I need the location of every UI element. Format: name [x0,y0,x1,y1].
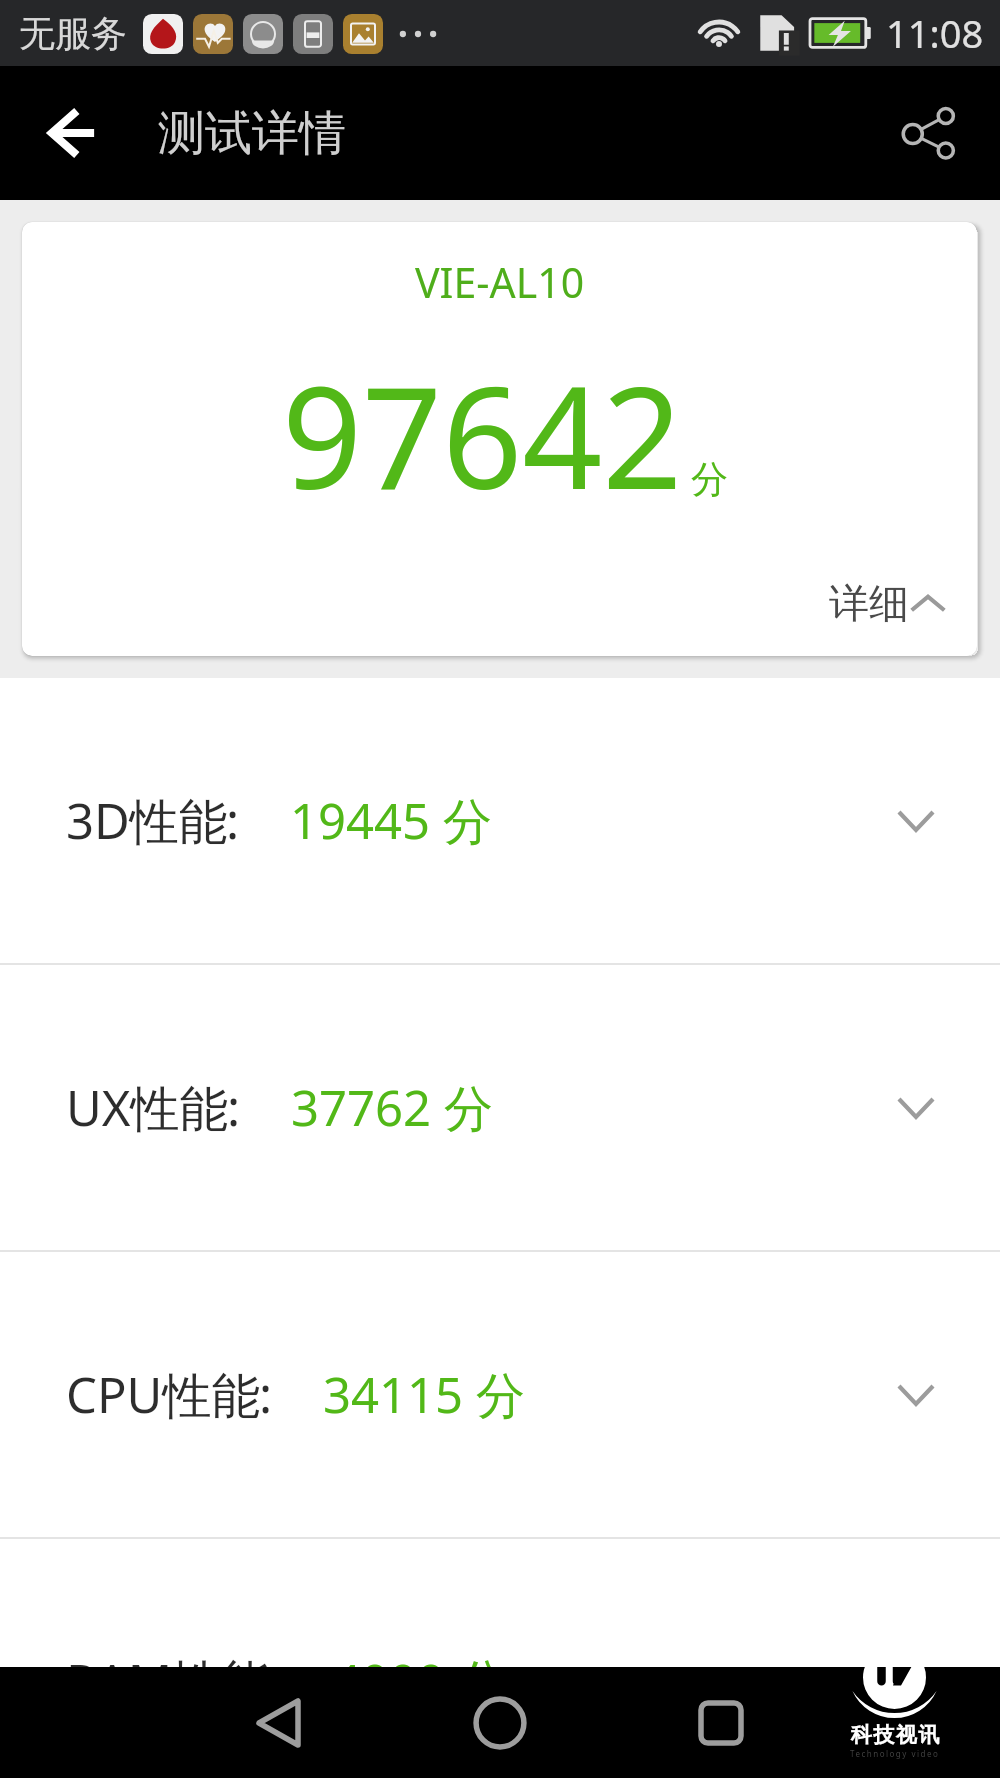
staticText: : [259,1361,273,1428]
button[interactable]: Home [445,1668,555,1778]
button[interactable]: 详细 [821,570,953,636]
staticText: 测试详情 [158,104,346,163]
button[interactable]: Back [224,1668,334,1778]
staticText: 科技视讯 [850,1722,940,1748]
staticText: : [269,1648,283,1715]
staticText: : [226,787,240,854]
button[interactable]: Back [28,88,118,178]
staticText: VIE-AL10 [415,254,585,310]
staticText: RAM性能 [66,1648,271,1715]
staticText: 详细 [829,578,909,628]
staticText: 分 [691,456,728,503]
staticText: 无服务 [19,11,127,56]
staticText: 97642 [282,339,683,530]
button[interactable]: RAM性能 [0,1539,1000,1778]
staticText: 34115 分 [323,1361,525,1428]
staticText: : [227,1074,241,1141]
staticText: 19445 分 [290,787,492,854]
staticText: 3D性能 [66,787,228,854]
staticText: CPU性能 [66,1361,261,1428]
staticText: Technology video [850,1748,940,1759]
button[interactable]: Recent apps [666,1668,776,1778]
button[interactable]: CPU性能 [0,1252,1000,1537]
staticText: 4000 分 [333,1648,507,1715]
staticText: 11:08 [886,7,984,59]
button[interactable]: UX性能 [0,965,1000,1250]
button[interactable]: Share [884,88,974,178]
staticText: UX性能 [66,1074,229,1141]
button[interactable]: 3D性能 [0,678,1000,963]
staticText: 37762 分 [291,1074,493,1141]
